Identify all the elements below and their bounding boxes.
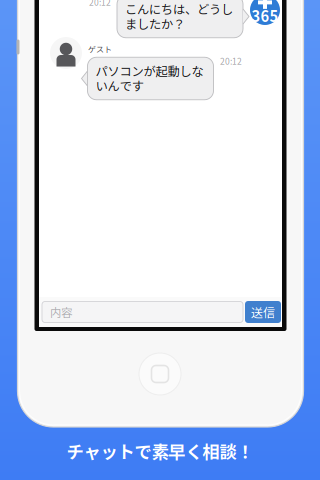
button[interactable]: 送信 [245,301,281,323]
staticText: いんです [95,76,143,94]
staticText: パソコンが起動しな [95,62,203,79]
button[interactable]: Home [138,352,182,396]
staticText: 送信 [251,303,275,321]
staticText: チャットで素早く相談！ [66,438,253,464]
staticText: 365 [251,5,278,26]
staticText: ゲスト [88,43,112,55]
staticText: こんにちは、どうし [125,0,233,17]
staticText: ましたか？ [125,14,185,32]
button[interactable]: 内容 [42,301,243,322]
staticText: 20:12 [220,55,242,67]
staticText: 20:12 [89,0,111,8]
staticText: 内容 [50,304,72,320]
